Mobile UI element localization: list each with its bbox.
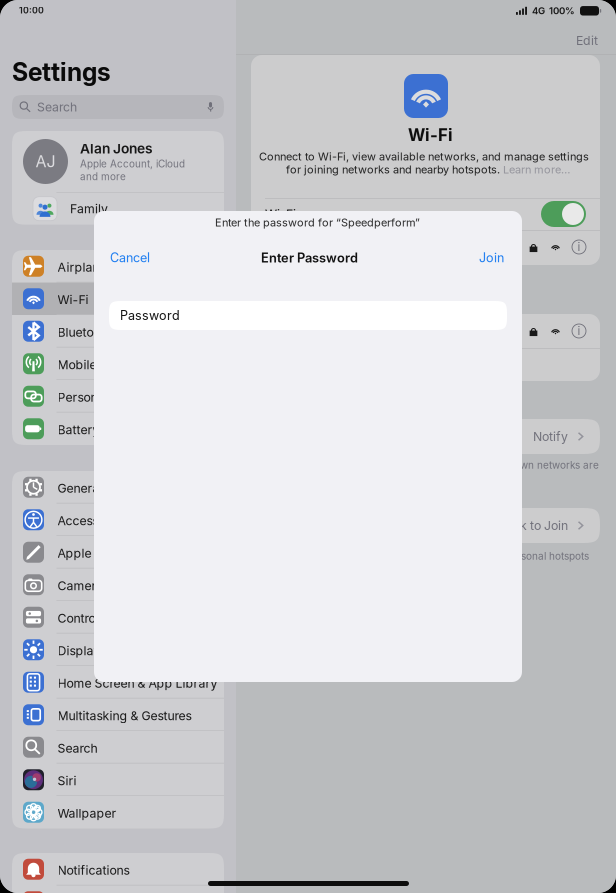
- staticText: Enter the password for “Speedperform”: [215, 216, 420, 229]
- staticText: Battery: [57, 422, 99, 437]
- button[interactable]: Control Centre: [12, 601, 224, 633]
- staticText: i: [577, 240, 580, 254]
- staticText: Edit: [576, 33, 598, 48]
- button[interactable]: Search: [12, 95, 224, 119]
- staticText: Notify: [533, 429, 568, 444]
- button[interactable]: Ask to Join Networks: [251, 419, 600, 454]
- staticText: Camera: [57, 578, 103, 593]
- button[interactable]: Sounds: [12, 885, 224, 893]
- staticText: Personal Hotspot: [57, 390, 155, 405]
- staticText: Home Screen & App Library: [57, 676, 217, 691]
- button[interactable]: General: [12, 471, 224, 503]
- staticText: Enter Password: [261, 250, 358, 265]
- button[interactable]: Bluetooth: [12, 315, 224, 347]
- staticText: Cancel: [110, 250, 150, 265]
- button[interactable]: Wi-Fi: [12, 282, 224, 315]
- staticText: 100%: [549, 5, 575, 17]
- staticText: LaCasaDiCarta: [265, 324, 352, 338]
- staticText: Accessibility: [57, 513, 129, 528]
- button[interactable]: Apple Pencil: [12, 536, 224, 568]
- staticText: Multitasking & Gestures: [57, 708, 191, 723]
- button[interactable]: Siri: [12, 763, 224, 796]
- staticText: Wi-Fi: [265, 207, 296, 221]
- staticText: Wallpaper: [57, 806, 116, 821]
- staticText: Bluetooth: [57, 325, 111, 340]
- staticText: Apple Account, iCloud: [80, 158, 185, 170]
- staticText: Ask to Join: [506, 518, 568, 533]
- staticText: Family: [70, 201, 108, 216]
- button[interactable]: LaCasaDiCarta: [251, 314, 600, 348]
- staticText: 4G: [532, 5, 545, 17]
- staticText: Password: [120, 308, 180, 323]
- button[interactable]: Multitasking & Gestures: [12, 698, 224, 731]
- button[interactable]: AJ: [12, 131, 224, 192]
- staticText: Apple Pencil: [57, 546, 129, 561]
- staticText: MY NETWORKS: [265, 299, 344, 311]
- button[interactable]: Family: [12, 193, 224, 225]
- button[interactable]: Wi-Fi: [251, 198, 600, 230]
- staticText: 10:00: [19, 5, 44, 16]
- staticText: Known networks will be joined automatica…: [265, 459, 599, 471]
- button[interactable]: Wallpaper: [12, 796, 224, 828]
- button[interactable]: Auto-Join Hotspot: [251, 508, 600, 543]
- staticText: Display & Brightness: [57, 643, 175, 658]
- staticText: Alan Jones: [80, 140, 153, 157]
- button[interactable]: Cancel: [100, 242, 160, 273]
- staticText: for joining networks and nearby hotspots…: [286, 163, 503, 176]
- button[interactable]: Battery: [12, 412, 224, 445]
- staticText: Join: [479, 250, 504, 265]
- staticText: Search: [37, 100, 77, 114]
- staticText: Control Centre: [57, 611, 139, 626]
- button[interactable]: Join: [469, 242, 514, 273]
- button[interactable]: Edit: [565, 26, 609, 55]
- button[interactable]: Speedperform: [251, 230, 600, 264]
- staticText: General: [57, 481, 102, 496]
- staticText: Connect to Wi-Fi, view available network…: [259, 150, 589, 163]
- staticText: Notifications: [57, 863, 129, 878]
- staticText: Search: [57, 741, 97, 756]
- staticText: Airplane Mode: [57, 260, 142, 275]
- button[interactable]: Notifications: [12, 853, 224, 885]
- staticText: Siri: [57, 773, 76, 788]
- staticText: Speedperform: [265, 240, 350, 254]
- button[interactable]: Camera: [12, 568, 224, 601]
- button[interactable]: Search: [12, 731, 224, 763]
- staticText: Settings: [12, 57, 111, 87]
- button[interactable]: Password: [109, 301, 507, 330]
- button[interactable]: Airplane Mode: [12, 250, 224, 282]
- staticText: and more: [80, 171, 126, 183]
- button[interactable]: Display & Brightness: [12, 633, 224, 666]
- button[interactable]: Mobile Data: [12, 347, 224, 380]
- button[interactable]: Personal Hotspot: [12, 380, 224, 412]
- staticText: Allow this device to automatically disco…: [265, 550, 589, 562]
- button[interactable]: Learn more…: [503, 163, 570, 176]
- staticText: AJ: [35, 152, 55, 171]
- button[interactable]: Other…: [251, 348, 600, 381]
- staticText: Wi-Fi: [57, 292, 88, 307]
- staticText: Wi-Fi: [408, 125, 453, 145]
- button[interactable]: Accessibility: [12, 503, 224, 536]
- staticText: i: [577, 324, 580, 338]
- button[interactable]: Home Screen & App Library: [12, 666, 224, 698]
- staticText: Mobile Data: [57, 357, 126, 372]
- staticText: Learn more…: [503, 163, 570, 176]
